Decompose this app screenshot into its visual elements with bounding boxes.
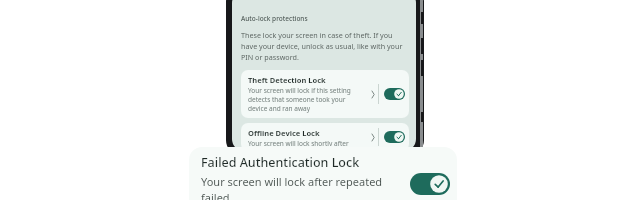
button[interactable]: Toggle Theft Detection Lock: [384, 88, 405, 100]
staticText: device and ran away: [248, 104, 310, 113]
button[interactable]: Toggle Offline Device Lock: [384, 131, 405, 143]
button[interactable]: Failed Authentication Lock: [189, 147, 457, 200]
staticText: Offline Device Lock: [248, 128, 320, 138]
staticText: Failed Authentication Lock: [201, 154, 360, 171]
staticText: Your screen will lock shortly after: [248, 139, 349, 146]
staticText: Your screen will lock if this setting: [248, 86, 351, 95]
staticText: Your screen will lock after repeated fai…: [201, 174, 404, 200]
button[interactable]: Theft Detection Lock: [241, 70, 409, 118]
staticText: These lock your screen in case of theft.…: [241, 30, 409, 62]
button[interactable]: Offline Device Lock: [241, 123, 409, 151]
staticText: Auto-lock protections: [241, 14, 308, 23]
button[interactable]: Failed Authentication Lock toggle: [410, 173, 450, 195]
staticText: detects that someone took your: [248, 95, 346, 104]
staticText: Theft Detection Lock: [248, 75, 326, 85]
